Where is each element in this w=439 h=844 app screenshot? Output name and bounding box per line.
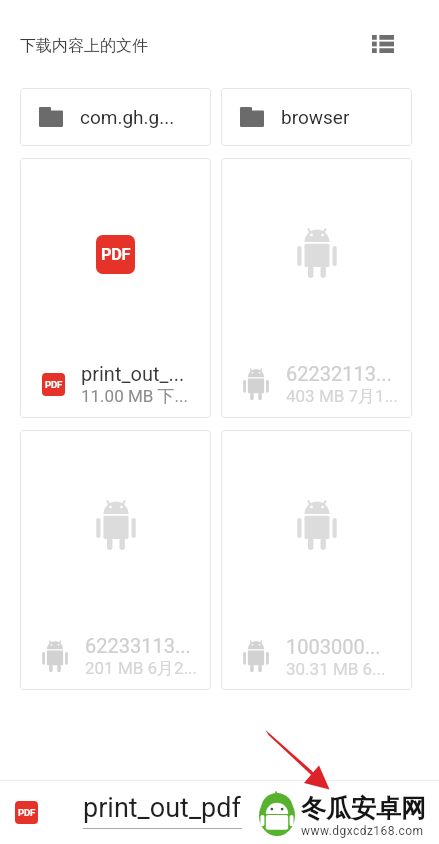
button[interactable]: PDF xyxy=(0,792,439,829)
staticText: 62233113... xyxy=(85,634,191,657)
staticText: PDF xyxy=(18,807,36,818)
button[interactable]: 62232113... xyxy=(221,158,412,418)
button[interactable]: Switch to list view xyxy=(365,26,401,62)
staticText: 下载内容上的文件 xyxy=(20,36,148,56)
staticText: 201 MB 6月2... xyxy=(85,658,198,679)
button[interactable]: 62233113... xyxy=(20,430,211,690)
staticText: 30.31 MB 6... xyxy=(286,659,386,679)
staticText: PDF xyxy=(45,379,63,390)
button[interactable]: browser xyxy=(221,88,412,146)
staticText: www.dgxcdz168.com xyxy=(301,824,424,838)
button[interactable]: 1003000... xyxy=(221,430,412,690)
staticText: PDF xyxy=(101,245,131,264)
staticText: com.gh.g... xyxy=(80,106,175,128)
staticText: print_out_... xyxy=(81,362,185,385)
staticText: 11.00 MB 下... xyxy=(81,386,189,407)
staticText: print_out_pdf xyxy=(83,792,241,824)
staticText: 403 MB 7月1... xyxy=(286,386,399,407)
staticText: 冬瓜安卓网 xyxy=(301,793,426,824)
staticText: 1003000... xyxy=(286,635,381,658)
button[interactable]: PDF xyxy=(20,158,211,418)
staticText: browser xyxy=(281,106,350,128)
staticText: 62232113... xyxy=(286,362,392,385)
button[interactable]: com.gh.g... xyxy=(20,88,211,146)
